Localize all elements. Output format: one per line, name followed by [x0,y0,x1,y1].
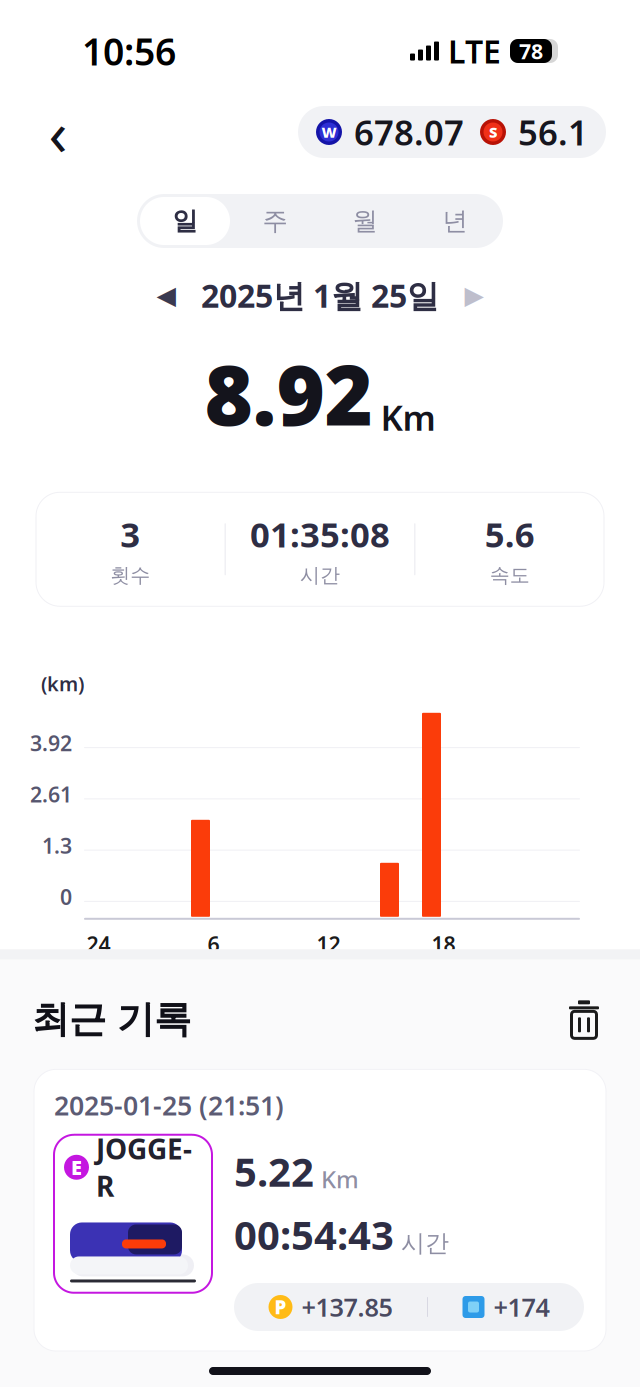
staticText: 00:54:43 [234,1208,394,1261]
staticText: 10:56 [82,26,176,76]
staticText: 678.07 [354,109,464,155]
staticText: 12 [316,930,340,958]
button[interactable]: Delete records [558,993,610,1045]
staticText: 최근 기록 [32,996,191,1042]
staticText: +174 [493,1290,549,1324]
staticText: 일 [172,205,197,236]
staticText: W [321,122,336,142]
staticText: ▶ [464,281,483,310]
staticText: JOGGER [96,1130,192,1204]
staticText: 3.92 [30,729,72,757]
button[interactable]: 년 [410,197,500,245]
button[interactable]: Next day [451,275,497,315]
staticText: 5.22 [234,1145,314,1198]
staticText: 6 [207,930,219,958]
staticText: 8.92 [204,338,372,448]
staticText: 56.1 [518,109,588,155]
staticText: Km [321,1163,359,1195]
staticText: 횟수 [110,563,150,588]
staticText: 18 [431,930,455,958]
staticText: (km) [41,670,84,697]
staticText: ‹ [48,91,67,173]
staticText: 주 [262,205,287,236]
staticText: 속도 [490,563,530,588]
button[interactable]: Wallet balance [298,106,606,158]
staticText: P [274,1295,286,1319]
staticText: ◀ [156,281,175,310]
button[interactable]: 일 [140,197,230,245]
staticText: 5.6 [485,511,535,557]
staticText: 월 [352,205,377,236]
staticText: 01:35:08 [250,511,390,557]
staticText: +137.85 [301,1290,392,1324]
staticText: LTE [448,30,501,72]
staticText: 24 [86,930,110,958]
staticText: 1.3 [42,831,72,860]
staticText: 시간 [401,1228,449,1258]
staticText: E [71,1154,82,1181]
staticText: 78 [519,37,543,65]
staticText: 년 [442,205,467,236]
staticText: 0 [60,882,72,911]
staticText: 2025년 1월 25일 [201,274,439,316]
staticText: S [489,122,497,142]
staticText: Km [380,394,435,440]
staticText: 2.61 [30,780,72,808]
staticText: 3 [120,511,140,557]
button[interactable]: 월 [320,197,410,245]
staticText: 2025-01-25 (21:51) [54,1087,284,1123]
staticText: 시간 [300,563,340,588]
button[interactable]: Back [30,104,86,160]
button[interactable]: 2025-01-25 (21:51) [34,1069,606,1351]
button[interactable]: 주 [230,197,320,245]
button[interactable]: Previous day [143,275,189,315]
